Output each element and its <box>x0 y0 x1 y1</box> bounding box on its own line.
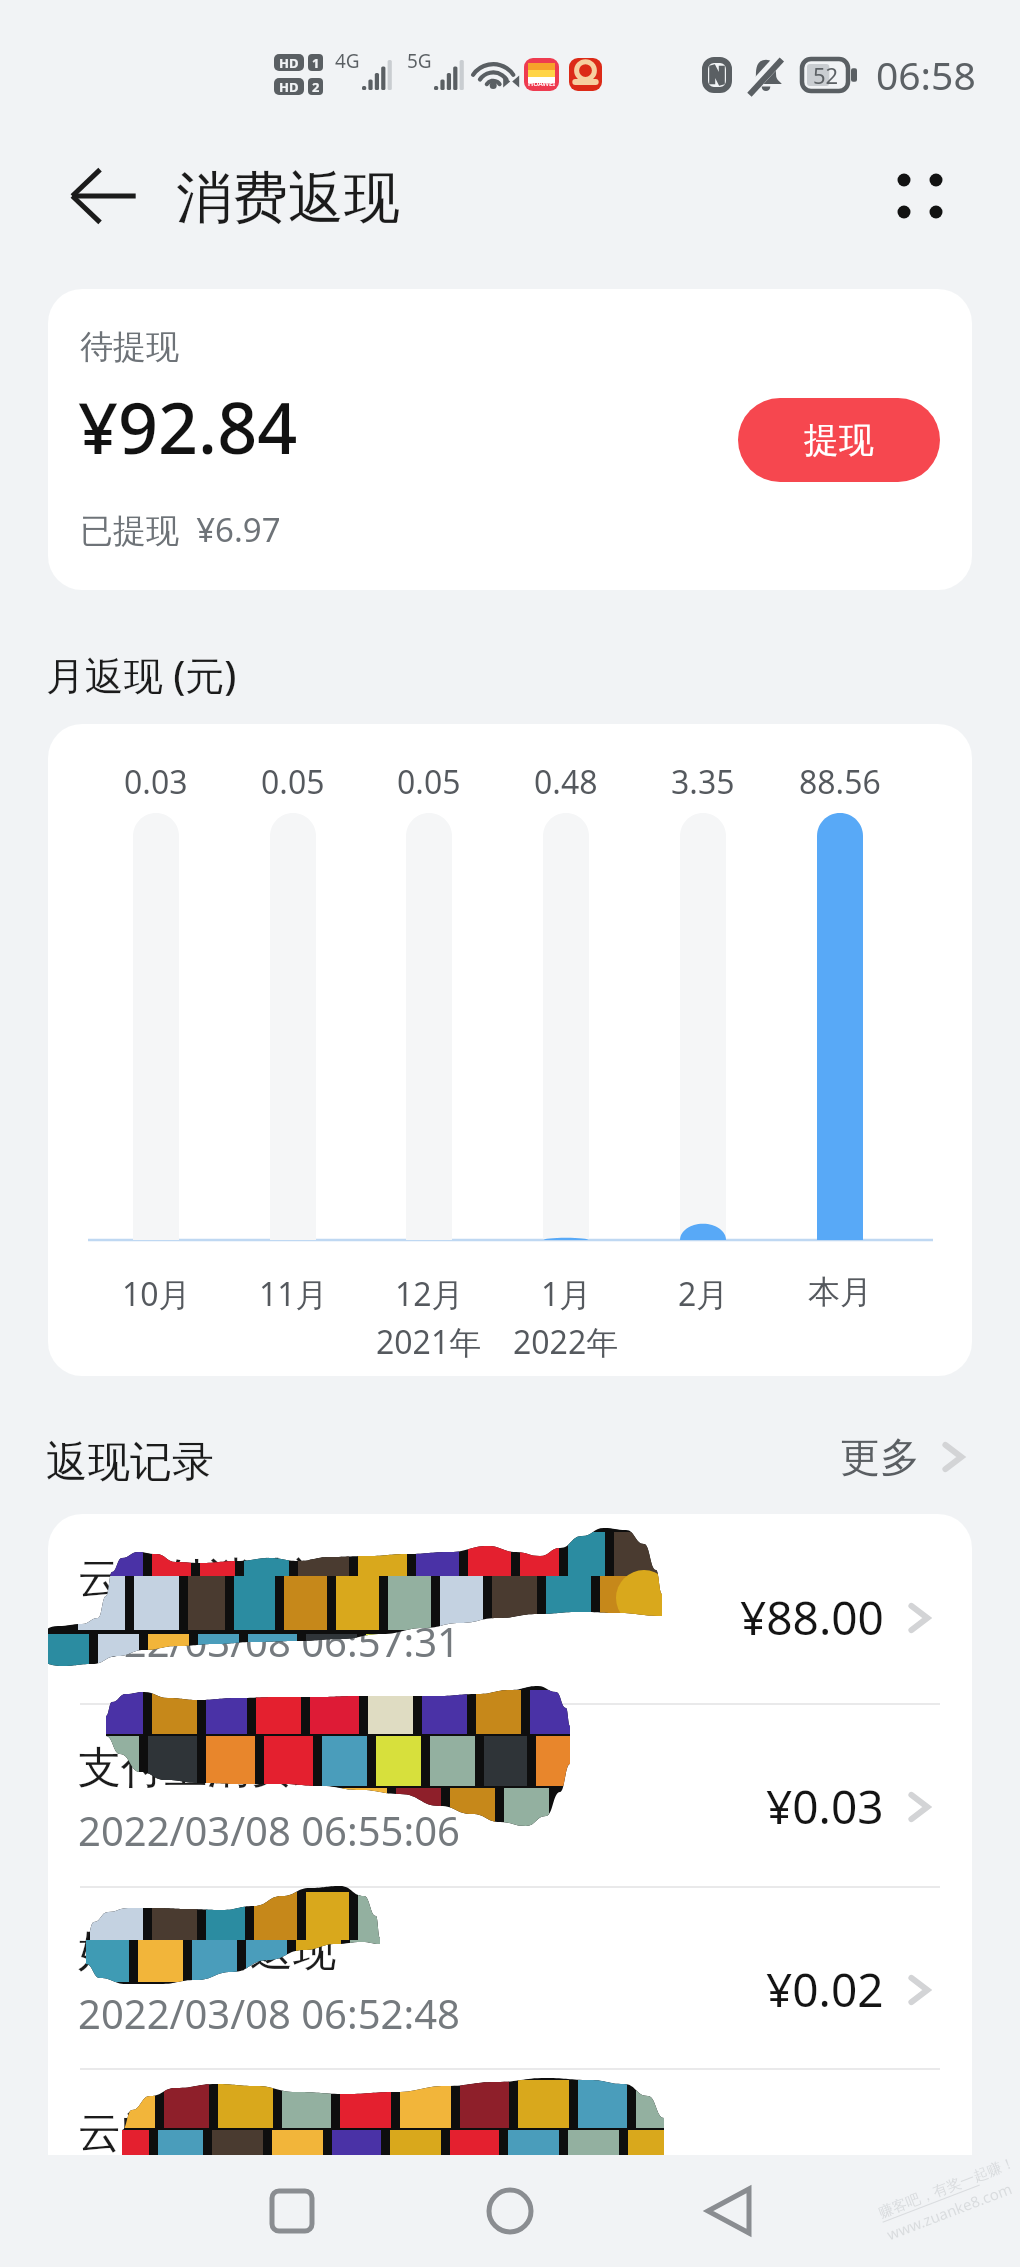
staticText: 06:58 <box>876 48 976 101</box>
staticText: 1 <box>312 54 320 71</box>
staticText: ¥0.02 <box>766 1958 884 2021</box>
staticText: 10月 <box>122 1272 191 1316</box>
staticText: 消费返现 <box>176 163 400 234</box>
staticText: 2021年 <box>376 1320 482 1364</box>
staticText: HD <box>279 54 299 71</box>
staticText: ¥88.00 <box>740 1586 884 1649</box>
staticText: HD <box>279 78 299 95</box>
staticText: 云闪付消费返现 <box>78 1552 379 1606</box>
staticText: 52 <box>813 60 839 90</box>
staticText: 3.35 <box>671 760 735 804</box>
staticText: ¥0.03 <box>766 1775 884 1838</box>
staticText: 待提现 <box>80 326 179 368</box>
staticText: 本月 <box>808 1272 872 1312</box>
staticText: ¥92.84 <box>78 379 298 474</box>
staticText: 88.56 <box>799 760 881 804</box>
button[interactable]: Back <box>670 2155 790 2267</box>
staticText: 2月 <box>678 1272 729 1316</box>
staticText: 支付宝消费返现 <box>78 1741 379 1795</box>
staticText: 0.05 <box>261 760 325 804</box>
staticText: 赚客吧，有奖一起赚！ <box>876 2153 1018 2222</box>
staticText: 云闪付消费返现 <box>78 2106 379 2155</box>
button[interactable]: 支付宝消费返现 <box>48 1703 972 1889</box>
staticText: 0.05 <box>397 760 461 804</box>
button[interactable]: 好友消费返现 <box>48 1886 972 2072</box>
button[interactable]: Recents <box>232 2155 352 2267</box>
staticText: 2022/03/08 06:57:31 <box>78 1614 460 1668</box>
staticText: 1月 <box>541 1272 592 1316</box>
staticText: www.zuanke8.com <box>884 2178 1015 2244</box>
staticText: 好友消费返现 <box>78 1924 336 1978</box>
staticText: 月返现 (元) <box>46 648 237 701</box>
staticText: 已提现 ¥6.97 <box>80 507 281 552</box>
staticText: 12月 <box>395 1272 464 1316</box>
staticText: 提现 <box>804 418 874 462</box>
button[interactable]: 更多 <box>840 1432 972 1482</box>
staticText: 4G <box>335 48 360 74</box>
button[interactable]: Back <box>58 150 150 242</box>
staticText: 11月 <box>259 1272 328 1316</box>
staticText: 2 <box>312 78 320 95</box>
staticText: 0.03 <box>124 760 188 804</box>
button[interactable]: 提现 <box>738 398 940 482</box>
staticText: 2022/03/08 06:55:06 <box>78 1803 460 1857</box>
button[interactable]: 云闪付消费返现 <box>48 2068 972 2155</box>
staticText: 2022年 <box>513 1320 619 1364</box>
button[interactable]: 云闪付消费返现 <box>48 1514 972 1700</box>
staticText: 5G <box>407 48 432 74</box>
button[interactable]: More options <box>872 148 968 244</box>
staticText: 2022/03/08 06:52:48 <box>78 1986 460 2040</box>
staticText: 0.48 <box>534 760 598 804</box>
staticText: 更多 <box>840 1432 920 1482</box>
staticText: 返现记录 <box>46 1436 214 1489</box>
staticText: HUAWEI <box>528 79 556 89</box>
button[interactable]: Home <box>450 2155 570 2267</box>
